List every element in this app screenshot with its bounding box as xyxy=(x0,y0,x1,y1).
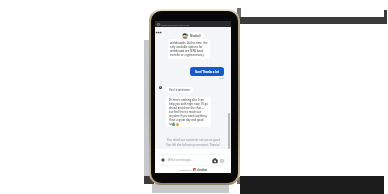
other: Send image xyxy=(212,158,218,164)
staticText: You left the following comment: Thanks! xyxy=(166,143,220,147)
staticText: www.example.com/chat xyxy=(161,23,190,26)
other: Emoji xyxy=(219,158,225,164)
button[interactable]: More options xyxy=(155,30,164,37)
staticText: Write a message... xyxy=(168,158,193,162)
other: Add attachment xyxy=(160,157,166,163)
button[interactable]: Nirahull xyxy=(182,32,201,39)
staticText: Sure! Thanks a lot xyxy=(195,70,219,74)
staticText: If there's nothing else I can help you w… xyxy=(169,98,208,126)
staticText: You're welcome xyxy=(169,88,190,92)
staticText: chatbot xyxy=(197,168,208,172)
staticText: Powered by xyxy=(179,168,192,171)
button[interactable]: Add attachment xyxy=(156,154,229,166)
staticText: Sent xyxy=(219,76,225,79)
staticText: You rated our customer service as good xyxy=(167,138,220,142)
staticText: Nirahull xyxy=(190,34,201,38)
staticText: withdrawals. At this time, the only avai… xyxy=(170,41,208,57)
